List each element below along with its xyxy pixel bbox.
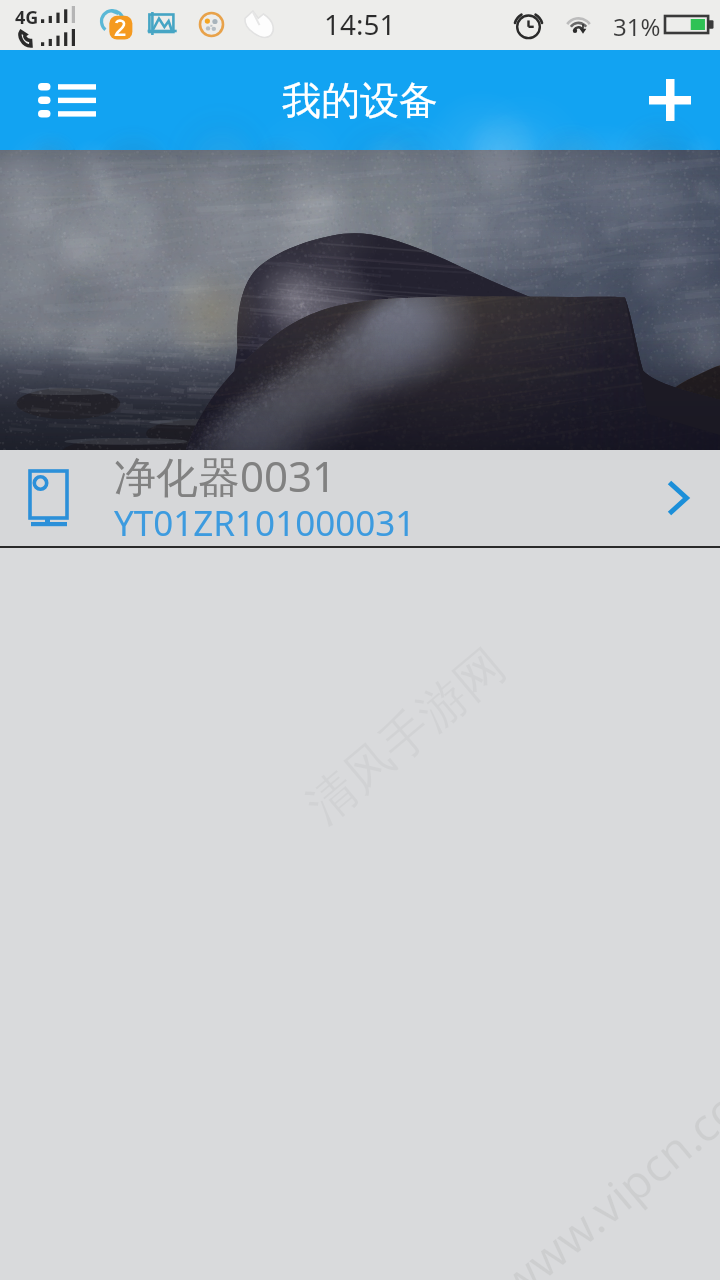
staticText: 净化器0031 (114, 447, 337, 504)
staticText: 31% (613, 10, 661, 43)
button[interactable]: Open device (624, 450, 720, 546)
button[interactable]: Add device (608, 50, 720, 150)
button[interactable]: Menu (0, 50, 112, 150)
staticText: 4G (15, 5, 39, 30)
button[interactable]: 净化器0031 (0, 450, 720, 546)
staticText: 14:51 (324, 5, 396, 43)
staticText: YT01ZR101000031 (114, 499, 416, 538)
staticText: 我的设备 (282, 76, 438, 125)
